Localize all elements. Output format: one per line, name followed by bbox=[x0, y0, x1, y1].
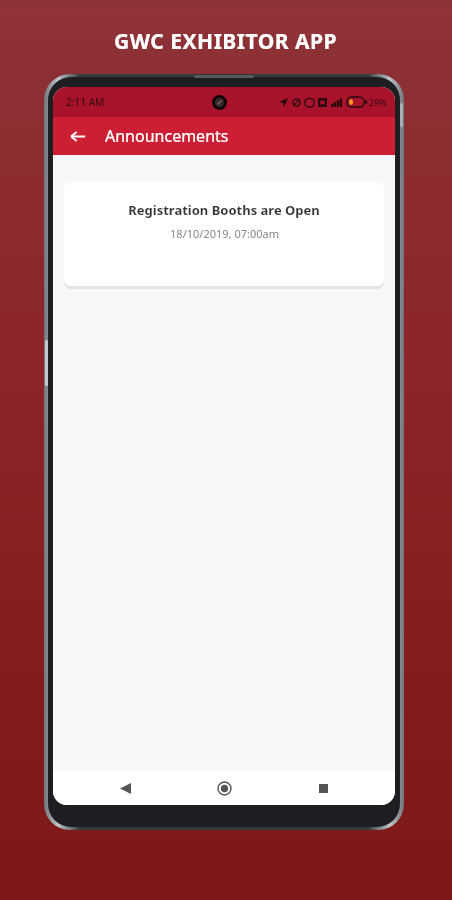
staticText: 29% bbox=[369, 96, 387, 108]
staticText: Announcements bbox=[105, 125, 229, 147]
button[interactable]: Home bbox=[209, 773, 239, 803]
button[interactable]: Back bbox=[110, 773, 140, 803]
staticText: 18/10/2019, 07:00am bbox=[170, 226, 279, 241]
button[interactable]: Registration Booths are Open bbox=[64, 182, 384, 286]
button[interactable]: Back bbox=[62, 121, 92, 151]
staticText: GWC EXHIBITOR APP bbox=[114, 27, 338, 56]
button[interactable]: Recent apps bbox=[308, 773, 338, 803]
staticText: 2:11 AM bbox=[66, 95, 105, 109]
staticText: Registration Booths are Open bbox=[128, 201, 320, 219]
